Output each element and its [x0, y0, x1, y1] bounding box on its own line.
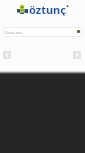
staticText: Ürün ara: [5, 30, 22, 35]
button[interactable]: Ürün ara: [3, 27, 82, 37]
staticText: öztunç: [29, 2, 66, 16]
button[interactable]: Search: [77, 30, 80, 33]
button[interactable]: Previous: [3, 51, 11, 59]
button[interactable]: Next: [73, 51, 81, 59]
